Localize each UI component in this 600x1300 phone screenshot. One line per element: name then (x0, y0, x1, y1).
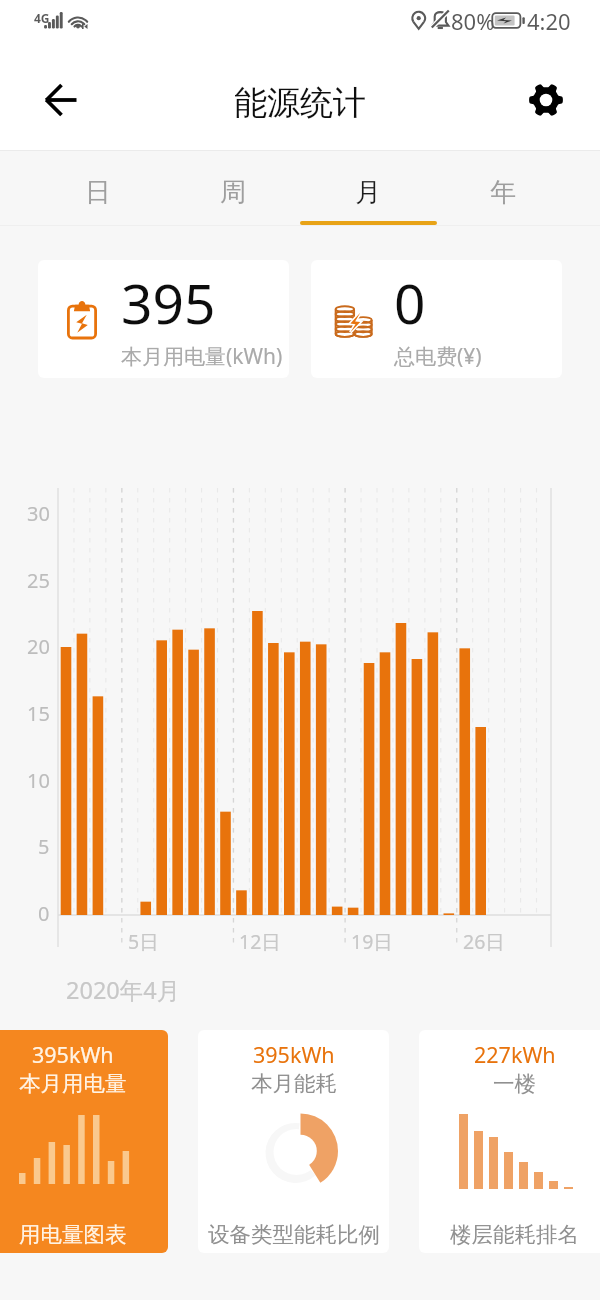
button[interactable]: 227kWh (419, 1030, 600, 1253)
staticText: 227kWh (474, 1040, 556, 1069)
button[interactable]: Settings (518, 72, 574, 128)
staticText: 395 (121, 265, 216, 340)
staticText: 周 (220, 176, 246, 209)
button[interactable]: 日 (30, 155, 165, 230)
staticText: 设备类型能耗比例 (208, 1221, 380, 1248)
staticText: 19日 (351, 928, 393, 955)
button[interactable]: 月 (300, 155, 435, 230)
staticText: 一楼 (493, 1070, 536, 1097)
staticText: 日 (85, 176, 111, 209)
staticText: 15 (27, 700, 50, 727)
staticText: 0 (394, 265, 426, 340)
staticText: 5日 (128, 928, 159, 955)
staticText: 0 (38, 900, 50, 927)
button[interactable]: 395 (38, 260, 289, 378)
staticText: 395kWh (32, 1040, 114, 1069)
button[interactable]: 年 (435, 155, 570, 230)
staticText: 楼层能耗排名 (450, 1221, 579, 1248)
staticText: 能源统计 (234, 82, 366, 124)
staticText: 10 (27, 767, 50, 794)
staticText: 80% (451, 6, 495, 36)
staticText: 年 (490, 176, 516, 209)
staticText: 2020年4月 (66, 974, 181, 1006)
staticText: 4G (34, 10, 50, 26)
staticText: 月 (355, 176, 381, 209)
staticText: 本月能耗 (251, 1070, 337, 1097)
staticText: 用电量图表 (19, 1221, 127, 1248)
staticText: 395kWh (253, 1040, 335, 1069)
staticText: 本月用电量(kWh) (121, 342, 283, 371)
staticText: 4:20 (527, 6, 571, 36)
button[interactable]: 395kWh (198, 1030, 389, 1253)
staticText: 25 (27, 567, 50, 594)
staticText: 12日 (239, 928, 281, 955)
button[interactable]: 0 (311, 260, 562, 378)
button[interactable]: Back (30, 69, 92, 131)
staticText: 20 (27, 633, 50, 660)
button[interactable]: 周 (165, 155, 300, 230)
button[interactable]: 395kWh (0, 1030, 168, 1253)
staticText: 5 (38, 833, 50, 860)
staticText: 本月用电量 (19, 1070, 127, 1097)
staticText: 30 (27, 500, 50, 527)
staticText: 26日 (463, 928, 505, 955)
staticText: 总电费(¥) (394, 342, 482, 371)
